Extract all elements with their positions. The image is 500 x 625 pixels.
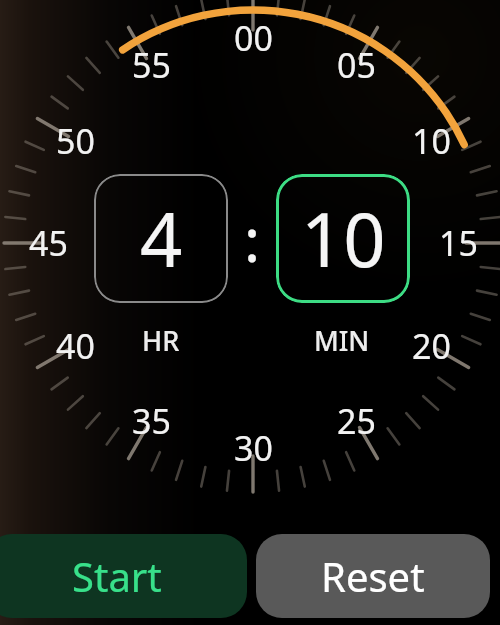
staticText: 50 <box>56 118 95 164</box>
staticText: 25 <box>337 398 376 444</box>
staticText: MIN <box>314 322 370 358</box>
staticText: 10 <box>301 188 386 289</box>
staticText: 45 <box>29 220 68 266</box>
staticText: 30 <box>234 425 273 471</box>
staticText: 15 <box>439 220 478 266</box>
staticText: 05 <box>337 42 376 88</box>
staticText: 40 <box>56 323 95 369</box>
staticText: 35 <box>132 398 171 444</box>
staticText: 4 <box>140 188 183 289</box>
staticText: Reset <box>321 549 425 603</box>
staticText: Start <box>72 549 162 603</box>
button[interactable]: Hours, 4 <box>94 174 228 303</box>
staticText: : <box>244 198 261 280</box>
staticText: HR <box>142 322 180 358</box>
staticText: 55 <box>132 42 171 88</box>
button[interactable]: Start <box>0 534 247 618</box>
button[interactable]: Reset <box>256 534 490 618</box>
staticText: 20 <box>412 323 451 369</box>
button[interactable]: Minutes, 10 <box>276 174 410 303</box>
staticText: 00 <box>234 15 273 61</box>
staticText: 10 <box>412 118 451 164</box>
